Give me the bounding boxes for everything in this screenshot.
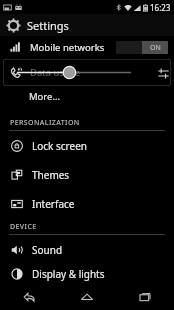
staticText: Themes: [32, 168, 70, 182]
button[interactable]: Adjust: [155, 65, 171, 81]
button[interactable]: Home: [58, 284, 116, 310]
staticText: Interface: [32, 197, 75, 211]
staticText: ON: [150, 43, 161, 53]
button[interactable]: Data usage: [3, 59, 171, 86]
button[interactable]: Lock screen: [0, 131, 174, 160]
button[interactable]: Back: [0, 284, 58, 310]
button[interactable]: Display & lights: [0, 264, 174, 284]
button[interactable]: ON: [116, 41, 168, 54]
staticText: DEVICE: [10, 222, 37, 232]
button[interactable]: Themes: [0, 160, 174, 189]
button[interactable]: Mobile networks: [0, 36, 174, 59]
button[interactable]: Interface: [0, 189, 174, 218]
button[interactable]: More...: [0, 86, 174, 106]
staticText: PERSONALIZATION: [10, 118, 80, 128]
button[interactable]: Recents: [116, 284, 174, 310]
staticText: 16:23: [150, 2, 171, 13]
staticText: More...: [29, 90, 61, 103]
staticText: Mobile networks: [30, 41, 105, 54]
staticText: Settings: [27, 18, 69, 33]
staticText: Data usage: [30, 66, 81, 79]
staticText: Lock screen: [32, 139, 88, 153]
staticText: Display & lights: [32, 267, 105, 281]
button[interactable]: Sound: [0, 235, 174, 264]
staticText: Sound: [32, 243, 63, 257]
